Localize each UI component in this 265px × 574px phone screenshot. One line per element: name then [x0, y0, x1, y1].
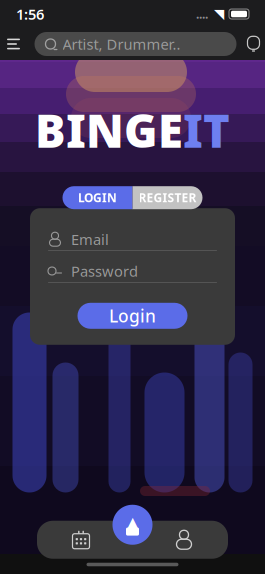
- button[interactable]: Menu: [1, 32, 25, 56]
- button[interactable]: Home: [110, 503, 154, 547]
- staticText: 1:56: [16, 4, 44, 24]
- staticText: Email: [71, 229, 109, 249]
- button[interactable]: REGISTER: [132, 186, 202, 209]
- button[interactable]: Search: [34, 32, 236, 56]
- button[interactable]: Profile: [156, 521, 212, 559]
- button[interactable]: Login: [77, 303, 187, 329]
- staticText: LOGIN: [78, 190, 117, 206]
- staticText: ▲: [127, 514, 138, 530]
- button[interactable]: Notifications: [243, 34, 263, 54]
- staticText: IT: [183, 100, 230, 160]
- staticText: BINGE: [35, 100, 183, 160]
- staticText: ◥: [214, 6, 224, 21]
- button[interactable]: Calendar: [53, 521, 109, 559]
- staticText: ....: [196, 6, 208, 22]
- staticText: Artist, Drummer..: [62, 34, 180, 54]
- staticText: REGISTER: [138, 190, 196, 206]
- button[interactable]: LOGIN: [62, 186, 132, 209]
- staticText: Password: [71, 261, 138, 281]
- staticText: Login: [109, 304, 156, 327]
